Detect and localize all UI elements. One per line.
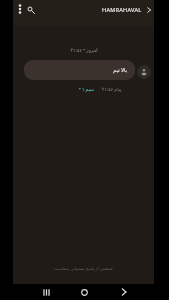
button[interactable]: Back	[117, 285, 131, 299]
staticText: HAMRAHAVAL	[102, 6, 142, 14]
staticText: قسمتی از پاسخ پشتیبانی شماست	[54, 266, 113, 272]
staticText: ۲۱:۵۶ • امروز	[70, 47, 98, 54]
button[interactable]: Recent apps	[39, 285, 53, 299]
button[interactable]: Contact avatar	[137, 65, 151, 79]
button[interactable]: Search	[24, 3, 36, 15]
button[interactable]: بالا نیم	[24, 60, 135, 80]
button[interactable]: Home	[77, 285, 91, 299]
button[interactable]: HAMRAHAVAL	[102, 6, 153, 14]
staticText: پیام ۲۱:۵۶	[102, 86, 122, 92]
staticText: • سیم ۱	[79, 86, 94, 92]
staticText: بالا نیم	[113, 66, 127, 73]
button[interactable]: More options	[13, 3, 25, 15]
